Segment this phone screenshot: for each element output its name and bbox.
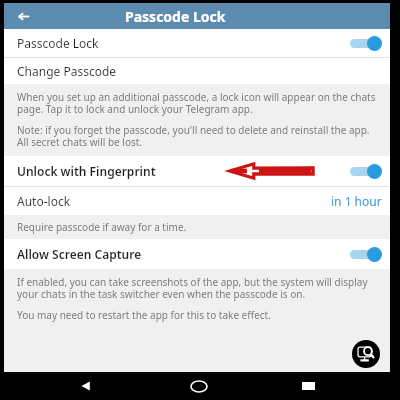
staticText: Auto-lock [17, 193, 71, 209]
button[interactable]: Back [74, 374, 98, 398]
button[interactable]: Toggle [348, 246, 382, 262]
button[interactable]: Passcode Lock [4, 29, 390, 57]
staticText: Require passcode if away for a time. [17, 220, 187, 234]
button[interactable]: Back [10, 3, 36, 29]
button[interactable]: Toggle [348, 163, 382, 179]
staticText: Passcode Lock [125, 7, 226, 26]
staticText: If enabled, you can take screenshots of … [17, 275, 380, 301]
staticText: Passcode Lock [17, 35, 348, 51]
button[interactable]: Toggle [348, 35, 382, 51]
button[interactable]: Screenshot tool [352, 340, 380, 368]
staticText: Unlock with Fingerprint [17, 163, 348, 179]
button[interactable]: Unlock with Fingerprint [4, 156, 390, 186]
staticText: Allow Screen Capture [17, 246, 348, 262]
staticText: in 1 hour [331, 193, 382, 209]
button[interactable]: Recent apps [296, 374, 320, 398]
staticText: You may need to restart the app for this… [17, 308, 271, 322]
button[interactable]: Allow Screen Capture [4, 239, 390, 269]
staticText: When you set up an additional passcode, … [17, 90, 380, 116]
staticText: Note: if you forget the passcode, you'll… [17, 123, 380, 149]
staticText: Change Passcode [17, 63, 117, 79]
button[interactable]: Home [187, 374, 211, 398]
button[interactable]: Auto-lock [4, 187, 390, 215]
button[interactable]: Change Passcode [4, 58, 390, 84]
